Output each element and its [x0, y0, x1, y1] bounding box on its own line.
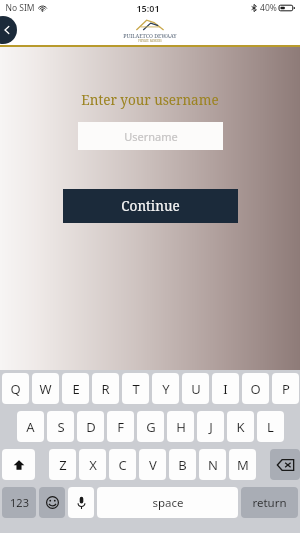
button[interactable]: space [97, 487, 238, 518]
button[interactable]: J [197, 411, 224, 442]
button[interactable]: S [47, 411, 74, 442]
button[interactable]: X [79, 449, 106, 480]
staticText: 15:01 [136, 2, 160, 14]
button[interactable]: D [77, 411, 104, 442]
button[interactable]: V [139, 449, 166, 480]
button[interactable]: T [122, 373, 149, 404]
button[interactable]: R [92, 373, 119, 404]
staticText: Username [124, 129, 178, 144]
button[interactable]: U [182, 373, 209, 404]
staticText: N [208, 456, 218, 474]
staticText: U [191, 380, 201, 398]
button[interactable]: K [227, 411, 254, 442]
button[interactable]: Dictate [68, 487, 94, 518]
button[interactable]: O [242, 373, 269, 404]
button[interactable]: L [257, 411, 284, 442]
staticText: Continue [121, 197, 180, 215]
staticText: 40% [260, 2, 277, 14]
staticText: Enter your username [81, 91, 219, 109]
staticText: M [237, 456, 249, 474]
staticText: Q [10, 380, 21, 398]
staticText: K [236, 418, 245, 436]
button[interactable]: Continue [63, 189, 238, 223]
staticText: P [282, 380, 290, 398]
button[interactable]: G [137, 411, 164, 442]
staticText: return [252, 495, 287, 511]
button[interactable]: M [229, 449, 256, 480]
button[interactable]: E [62, 373, 89, 404]
staticText: J [209, 418, 213, 436]
staticText: B [178, 456, 187, 474]
staticText: No SIM [5, 2, 35, 14]
staticText: space [152, 495, 184, 511]
staticText: E [72, 380, 80, 398]
staticText: PRIVATE BANKERS [138, 39, 162, 43]
staticText: L [267, 418, 274, 436]
staticText: F [117, 418, 124, 436]
button[interactable]: Q [2, 373, 29, 404]
button[interactable]: Z [49, 449, 76, 480]
button[interactable]: F [107, 411, 134, 442]
button[interactable]: return [241, 487, 298, 518]
staticText: W [39, 380, 52, 398]
staticText: O [250, 380, 261, 398]
button[interactable]: 123 [2, 487, 36, 518]
button[interactable]: I [212, 373, 239, 404]
button[interactable]: B [169, 449, 196, 480]
staticText: T [132, 380, 140, 398]
button[interactable]: Back [0, 16, 17, 44]
staticText: G [146, 418, 156, 436]
staticText: X [89, 456, 97, 474]
staticText: Y [162, 380, 170, 398]
staticText: H [176, 418, 186, 436]
button[interactable]: N [199, 449, 226, 480]
staticText: I [223, 380, 228, 398]
staticText: Z [59, 456, 67, 474]
button[interactable]: Backspace [270, 449, 300, 480]
button[interactable]: C [109, 449, 136, 480]
button[interactable]: Shift [2, 449, 35, 480]
staticText: C [118, 456, 127, 474]
staticText: V [149, 456, 157, 474]
button[interactable]: Username [78, 122, 223, 150]
staticText: A [26, 418, 35, 436]
staticText: S [57, 418, 65, 436]
staticText: 123 [10, 495, 29, 510]
button[interactable]: Emoji [39, 487, 65, 518]
staticText: D [86, 418, 96, 436]
button[interactable]: P [272, 373, 299, 404]
button[interactable]: Y [152, 373, 179, 404]
button[interactable]: A [17, 411, 44, 442]
button[interactable]: H [167, 411, 194, 442]
staticText: R [101, 380, 110, 398]
button[interactable]: W [32, 373, 59, 404]
staticText: PUILAETCO DEWAAY [123, 32, 177, 39]
